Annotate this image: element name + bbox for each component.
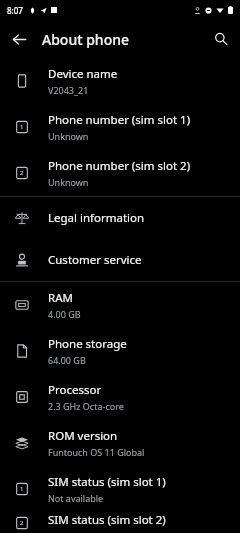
button[interactable]: 2	[0, 512, 240, 533]
staticText: ROM version	[48, 428, 118, 444]
staticText: Device name	[48, 66, 118, 82]
staticText: RAM	[48, 290, 73, 306]
staticText: Unknown	[48, 176, 89, 188]
button[interactable]: Customer service	[0, 239, 240, 281]
staticText: SIM status (sim slot 2)	[48, 512, 166, 528]
button[interactable]: ROM version	[0, 420, 240, 466]
button[interactable]: Back	[0, 20, 38, 58]
staticText: 4.00 GB	[48, 308, 81, 320]
button[interactable]: 1	[0, 466, 240, 512]
staticText: 64.00 GB	[48, 354, 86, 366]
staticText: Customer service	[48, 252, 142, 268]
button[interactable]: 1	[0, 104, 240, 150]
staticText: 2	[20, 519, 24, 527]
staticText: 2.3 GHz Octa-core	[48, 400, 124, 412]
staticText: 2	[20, 169, 24, 177]
staticText: Legal information	[48, 210, 145, 226]
button[interactable]: Processor	[0, 374, 240, 420]
staticText: Phone storage	[48, 336, 127, 352]
staticText: Phone number (sim slot 1)	[48, 112, 191, 128]
staticText: Processor	[48, 382, 102, 398]
staticText: About phone	[42, 30, 130, 49]
button[interactable]: Search	[202, 20, 240, 58]
staticText: 1	[20, 485, 24, 493]
staticText: Unknown	[48, 130, 89, 142]
button[interactable]: Device name	[0, 58, 240, 104]
staticText: Not available	[48, 492, 104, 504]
staticText: Phone number (sim slot 2)	[48, 158, 191, 174]
staticText: 8:07	[7, 5, 23, 16]
staticText: 1	[20, 123, 24, 131]
button[interactable]: 2	[0, 150, 240, 196]
button[interactable]: RAM	[0, 282, 240, 328]
button[interactable]: Legal information	[0, 197, 240, 239]
button[interactable]: Phone storage	[0, 328, 240, 374]
staticText: Funtouch OS 11 Global	[48, 446, 145, 458]
staticText: SIM status (sim slot 1)	[48, 474, 166, 490]
staticText: V2043_21	[48, 84, 89, 96]
